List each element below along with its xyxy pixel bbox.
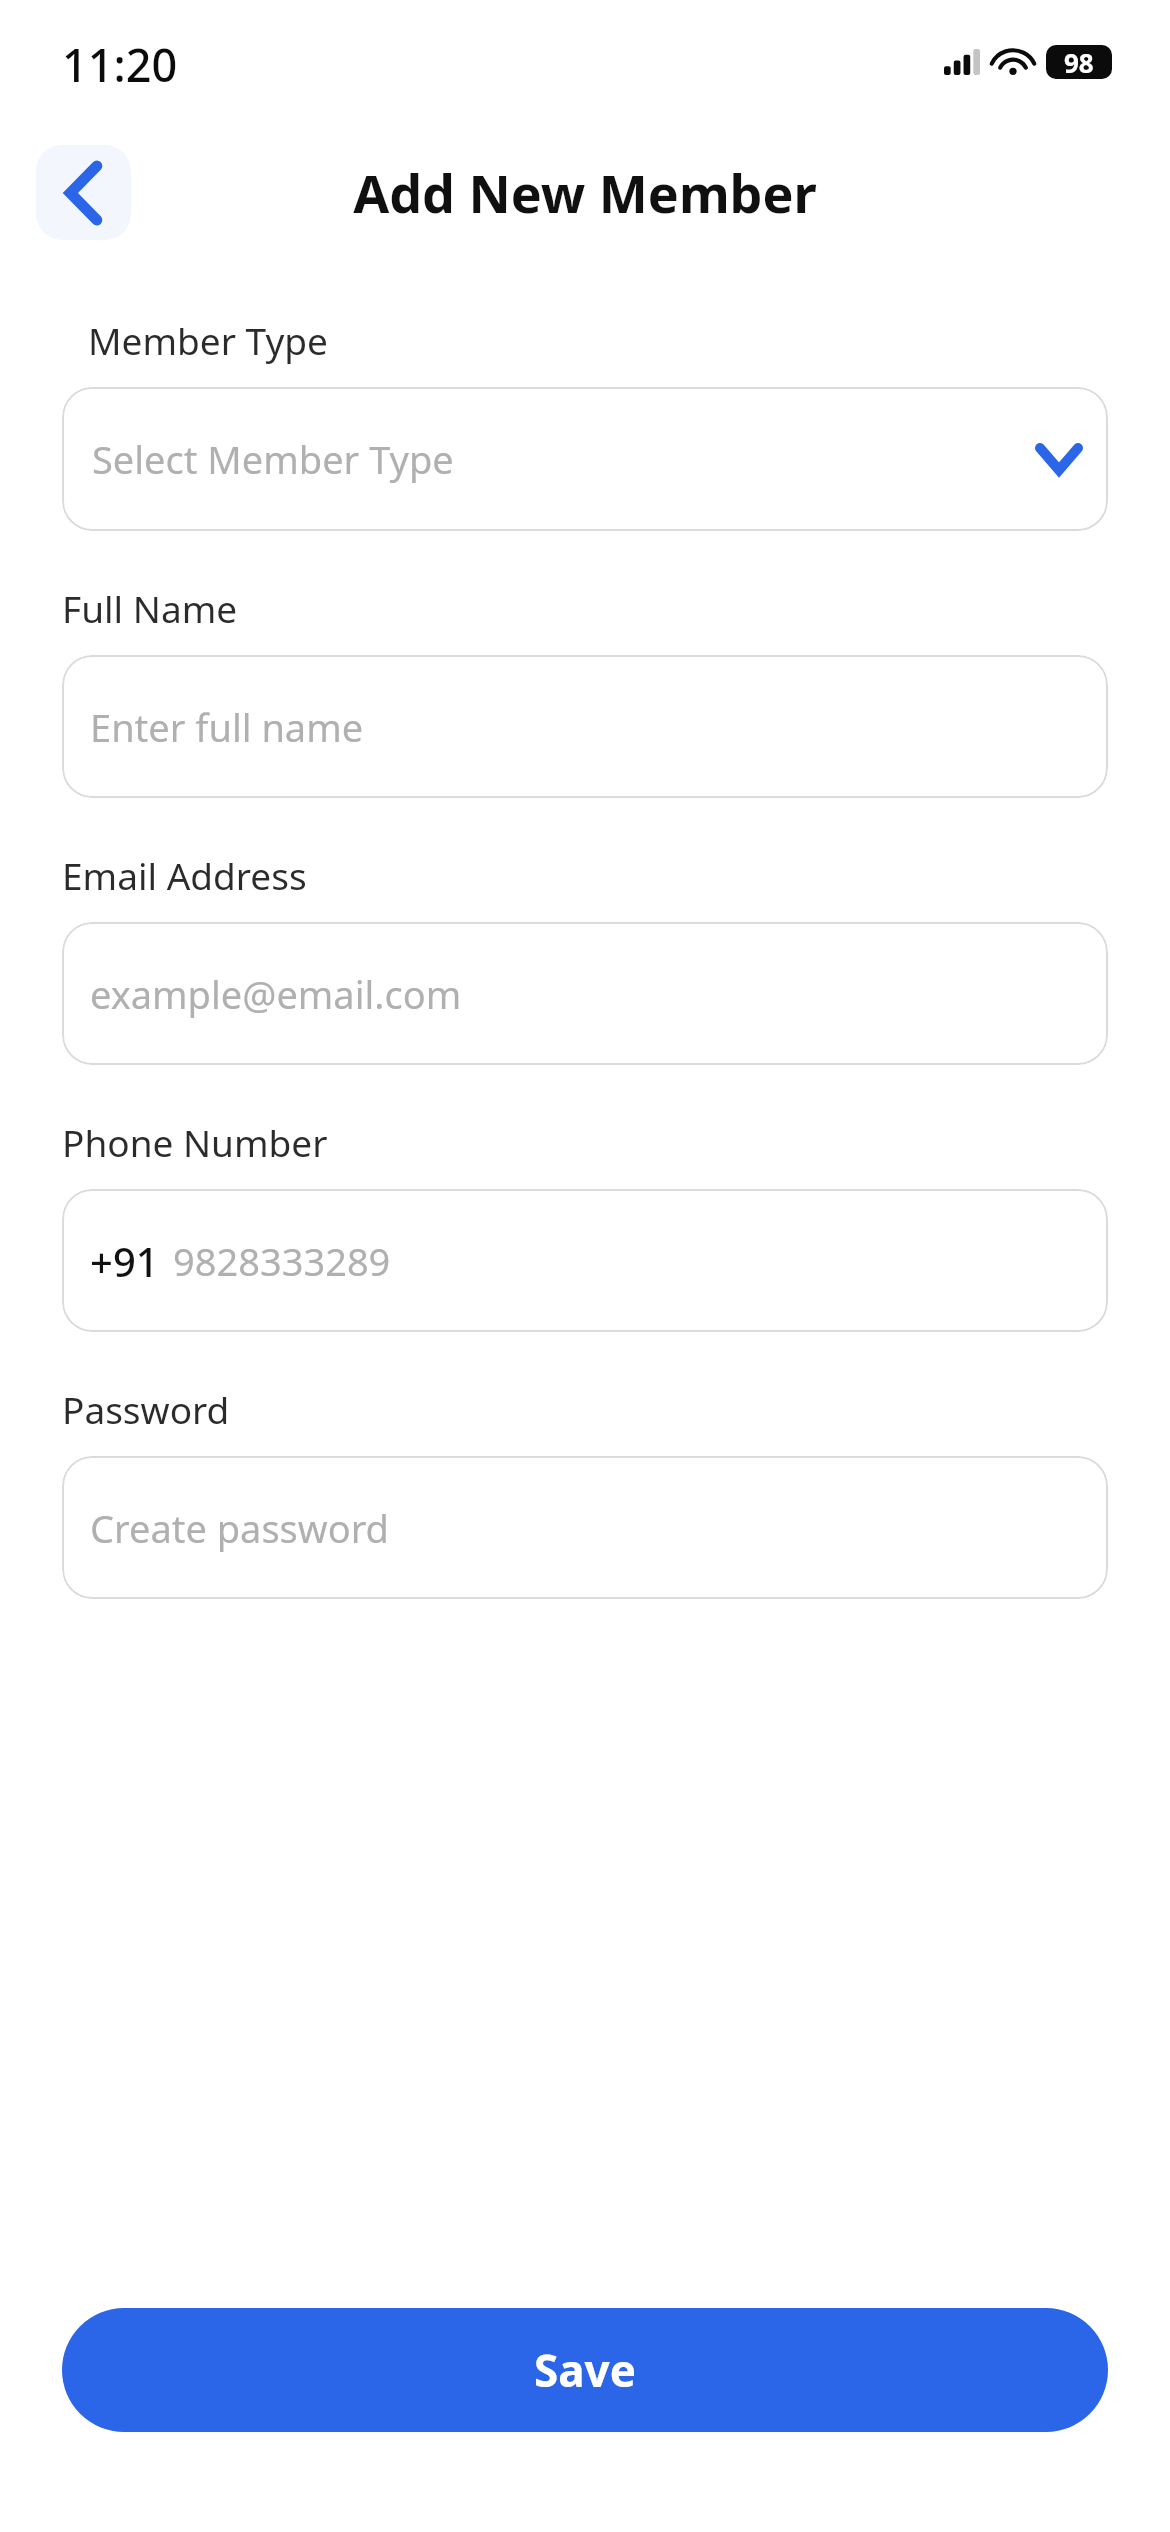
button[interactable]: Create password — [62, 1456, 1108, 1599]
staticText: example@email.com — [90, 968, 462, 1020]
staticText: Member Type — [88, 315, 328, 365]
staticText: Select Member Type — [92, 433, 454, 485]
button[interactable]: example@email.com — [62, 922, 1108, 1065]
staticText: Password — [62, 1384, 230, 1434]
staticText: Add New Member — [353, 157, 817, 228]
staticText: Email Address — [62, 850, 307, 900]
staticText: Create password — [90, 1502, 389, 1554]
staticText: Save — [534, 2340, 636, 2400]
staticText: Phone Number — [62, 1117, 328, 1167]
button[interactable]: Back — [36, 145, 131, 240]
staticText: 98 — [1064, 45, 1094, 79]
staticText: Enter full name — [90, 701, 364, 753]
staticText: Full Name — [62, 583, 238, 633]
staticText: 9828333289 — [173, 1235, 391, 1287]
staticText: +91 — [90, 1234, 159, 1288]
button[interactable]: Enter full name — [62, 655, 1108, 798]
button[interactable]: Select Member Type — [62, 387, 1108, 531]
button[interactable]: Save — [62, 2308, 1108, 2432]
staticText: 11:20 — [62, 34, 178, 95]
button[interactable]: +91 — [62, 1189, 1108, 1332]
